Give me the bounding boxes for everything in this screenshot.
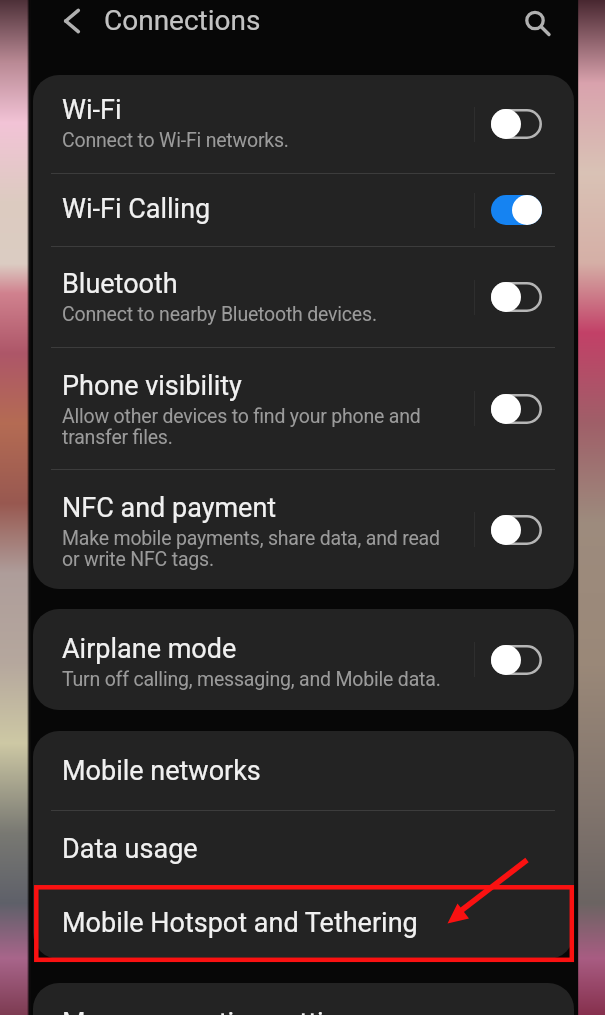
button[interactable]: Back [50,0,96,46]
button[interactable]: Switch off [491,281,542,313]
staticText: Mobile networks [62,754,261,787]
button[interactable]: Bluetooth [33,247,574,347]
staticText: Data usage [62,832,198,865]
staticText: NFC and payment [62,491,277,524]
staticText: Connections [104,4,261,37]
button[interactable]: Data usage [33,811,574,885]
button[interactable]: NFC and payment [33,470,574,589]
staticText: Wi-Fi Calling [62,192,211,225]
staticText: Allow other devices to find your phone a… [62,406,452,448]
staticText: Mobile Hotspot and Tethering [62,906,418,939]
button[interactable]: Switch off [491,514,542,546]
button[interactable]: Wi-Fi Calling [33,174,574,246]
staticText: Make mobile payments, share data, and re… [62,528,452,570]
button[interactable]: Airplane mode [33,609,574,710]
staticText: Phone visibility [62,369,242,402]
button[interactable]: More connection settings [33,983,574,1015]
button[interactable]: Switch on [491,194,542,226]
button[interactable]: Mobile networks [33,731,574,810]
staticText: Bluetooth [62,267,178,300]
button[interactable]: Wi-Fi [33,75,574,173]
button[interactable]: Switch off [491,393,542,425]
button[interactable]: Phone visibility [33,348,574,469]
staticText: Connect to Wi-Fi networks. [62,130,289,151]
button[interactable]: Mobile Hotspot and Tethering [33,886,574,959]
staticText: More connection settings [62,1006,368,1015]
staticText: Airplane mode [62,632,237,665]
staticText: Connect to nearby Bluetooth devices. [62,304,377,325]
button[interactable]: Switch off [491,108,542,140]
staticText: Wi-Fi [62,93,122,126]
staticText: Turn off calling, messaging, and Mobile … [62,669,441,690]
button[interactable]: Switch off [491,644,542,676]
button[interactable]: Search [511,0,557,43]
